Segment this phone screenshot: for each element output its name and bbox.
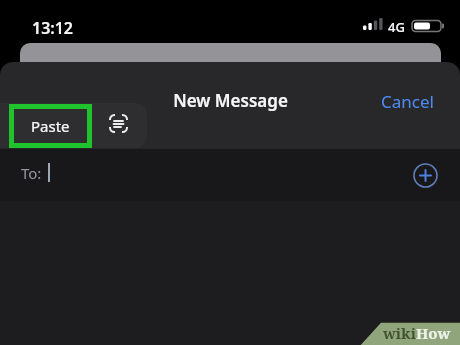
staticText: 4G (388, 18, 405, 36)
button[interactable] (108, 114, 129, 133)
button[interactable] (412, 162, 439, 189)
button[interactable]: To: (0, 149, 460, 201)
staticText: New Message (173, 89, 288, 112)
button[interactable]: Paste (9, 103, 92, 148)
staticText: To: (21, 163, 42, 183)
staticText: wikiHow (383, 323, 451, 343)
staticText: 13:12 (32, 17, 74, 39)
button[interactable]: Cancel (381, 90, 434, 113)
staticText: Paste (31, 116, 70, 136)
